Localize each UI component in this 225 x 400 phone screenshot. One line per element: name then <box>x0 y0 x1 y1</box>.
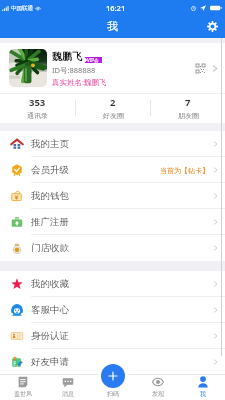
staticText: 推广注册 <box>31 216 69 228</box>
staticText: 真实姓名:魏鹏飞 <box>52 77 107 87</box>
staticText: 我的钱包 <box>31 190 69 202</box>
staticText: 353 <box>29 96 46 109</box>
button[interactable]: Settings <box>199 16 225 38</box>
button[interactable]: 会员升级 <box>0 157 225 183</box>
button[interactable]: 推广注册 <box>0 209 225 235</box>
staticText: 朋友圈 <box>178 111 199 120</box>
button[interactable]: 我 <box>180 374 225 400</box>
staticText: 通讯录 <box>27 111 48 120</box>
button[interactable]: 客服中心 <box>0 297 225 323</box>
staticText: 好友申请 <box>31 356 69 368</box>
staticText: ID号:888888 <box>52 65 96 75</box>
staticText: 2 <box>110 96 116 109</box>
staticText: 魏鹏飞 <box>52 50 82 63</box>
staticText: 身份认证 <box>31 330 69 342</box>
staticText: 当前为【钻卡】 <box>160 166 209 175</box>
staticText: 会员升级 <box>31 164 69 176</box>
staticText: 我的收藏 <box>31 278 69 290</box>
staticText: 16:21 <box>106 3 126 13</box>
button[interactable]: 发现 <box>135 374 180 400</box>
staticText: 好友圈 <box>103 111 124 120</box>
staticText: VIP会员 <box>87 57 102 63</box>
button[interactable]: 353 <box>0 93 75 123</box>
button[interactable]: 魏鹏飞 <box>0 43 225 93</box>
staticText: 消息 <box>62 390 74 398</box>
button[interactable]: 身份认证 <box>0 323 225 349</box>
staticText: 7 <box>185 96 191 109</box>
staticText: 中国联通 <box>11 5 33 12</box>
button[interactable]: 我的收藏 <box>0 271 225 297</box>
button[interactable]: 门店收款 <box>0 235 225 261</box>
button[interactable]: 盖世风 <box>0 374 45 400</box>
button[interactable]: 2 <box>76 93 150 123</box>
button[interactable]: 7 <box>151 93 225 123</box>
button[interactable]: 消息 <box>45 374 90 400</box>
staticText: 门店收款 <box>31 242 69 254</box>
button[interactable]: 扫码 <box>101 364 125 388</box>
button[interactable]: 扫码 <box>90 374 135 400</box>
staticText: 客服中心 <box>31 304 69 316</box>
staticText: 我 <box>200 390 206 398</box>
staticText: 发现 <box>152 390 164 398</box>
staticText: 我的主页 <box>31 138 69 150</box>
button[interactable]: 我的主页 <box>0 131 225 157</box>
staticText: 扫码 <box>107 390 119 398</box>
staticText: 盖世风 <box>14 390 32 398</box>
staticText: 我 <box>107 19 118 33</box>
button[interactable]: 二维码 <box>194 62 207 75</box>
button[interactable]: 好友申请 <box>0 349 225 375</box>
button[interactable]: 我的钱包 <box>0 183 225 209</box>
